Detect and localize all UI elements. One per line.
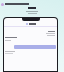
- button[interactable]: [14, 45, 56, 49]
- button[interactable]: Logo: [1, 3, 4, 6]
- button[interactable]: [4, 22, 57, 26]
